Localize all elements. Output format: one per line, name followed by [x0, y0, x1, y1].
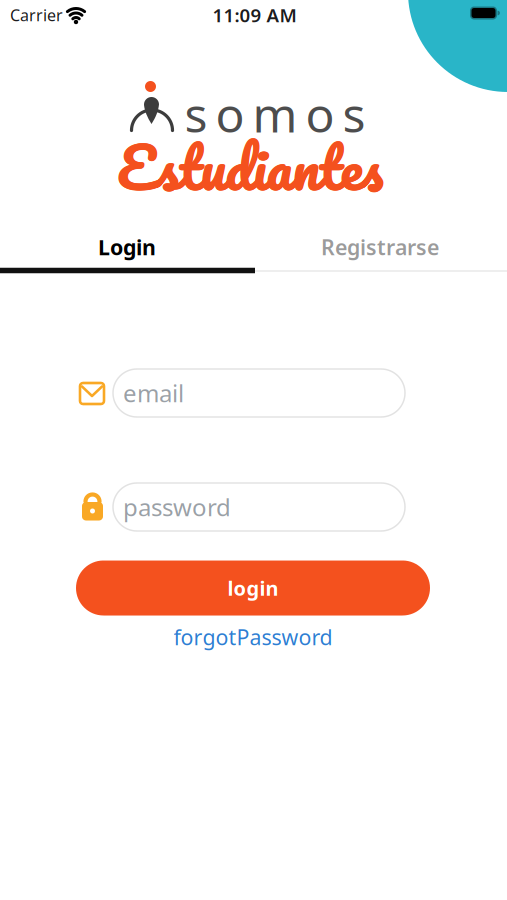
button[interactable]: Login — [0, 225, 253, 269]
staticText: Estudiantes — [118, 119, 384, 215]
staticText: Estudiantes — [117, 119, 383, 215]
staticText: 11:09 AM — [212, 3, 296, 27]
staticText: Estudiantes — [117, 119, 383, 215]
button[interactable]: Registrarse — [253, 225, 506, 269]
staticText: Registrarse — [321, 233, 439, 261]
button[interactable]: email — [113, 369, 405, 417]
button[interactable]: forgotPassword — [173, 623, 332, 651]
staticText: Login — [98, 233, 156, 261]
staticText: login — [227, 575, 278, 601]
staticText: Estudiantes — [117, 119, 383, 215]
staticText: email — [123, 377, 184, 409]
staticText: somos — [184, 82, 365, 146]
staticText: forgotPassword — [173, 623, 332, 651]
button[interactable]: password — [113, 483, 405, 531]
staticText: password — [123, 491, 231, 523]
staticText: Carrier — [10, 4, 63, 26]
button[interactable]: login — [76, 560, 430, 615]
